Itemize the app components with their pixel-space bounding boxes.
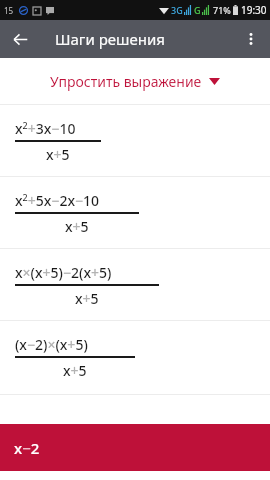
staticText: x+5	[75, 289, 99, 308]
staticText: x2+5x−2x−10	[15, 191, 100, 210]
staticText: Шаги решения	[55, 29, 165, 49]
staticText: 3G	[171, 4, 183, 16]
staticText: x+5	[65, 217, 89, 236]
staticText: x+5	[63, 361, 87, 380]
staticText: x−2	[14, 438, 40, 458]
button[interactable]: Back	[3, 22, 37, 56]
button[interactable]: x2+3x−10	[0, 105, 270, 177]
button[interactable]: More options	[234, 22, 268, 56]
staticText: x+5	[46, 145, 70, 164]
staticText: 19:30	[241, 3, 267, 17]
button[interactable]: (x−2)×(x+5)	[0, 321, 270, 395]
staticText: 71%	[213, 4, 231, 16]
staticText: 15	[4, 5, 14, 16]
button[interactable]: x2+5x−2x−10	[0, 177, 270, 249]
button[interactable]: x×(x+5)−2(x+5)	[0, 249, 270, 321]
staticText: G	[194, 4, 201, 16]
staticText: x2+3x−10	[15, 119, 76, 138]
staticText: (x−2)×(x+5)	[15, 335, 88, 354]
button[interactable]: x−2	[0, 424, 270, 471]
staticText: x×(x+5)−2(x+5)	[15, 263, 112, 282]
button[interactable]: Упростить выражение	[42, 66, 228, 97]
staticText: Упростить выражение	[50, 72, 202, 91]
